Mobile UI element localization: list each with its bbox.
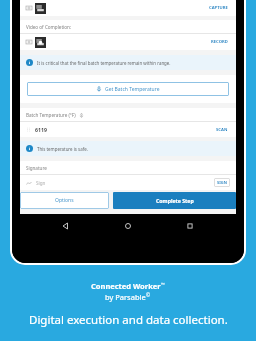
staticText: Options (55, 197, 74, 204)
button[interactable]: CAPTURE (207, 3, 230, 13)
staticText: Connected Worker (91, 281, 161, 291)
staticText: This temperature is safe. (37, 146, 88, 152)
button[interactable]: SIGN (214, 178, 230, 187)
button[interactable]: Complete Step (113, 192, 236, 209)
button[interactable]: Back (58, 218, 74, 234)
staticText: Sign (36, 180, 46, 186)
button[interactable]: RECORD (209, 37, 230, 47)
button[interactable]: Get Batch Temperature (27, 82, 229, 96)
button[interactable]: Reorder (20, 122, 236, 137)
staticText: RECORD (211, 39, 228, 45)
button[interactable]: Signature (20, 175, 236, 190)
staticText: by Parsable (105, 292, 146, 302)
staticText: Digital execution and data collection. (29, 312, 228, 328)
staticText: SCAN (216, 127, 228, 133)
other: Video (26, 39, 32, 45)
button[interactable]: Recents (182, 218, 198, 234)
button[interactable]: SCAN (214, 125, 230, 135)
button[interactable]: Options (20, 192, 109, 209)
button[interactable]: Video (20, 34, 236, 50)
other: Signature (26, 180, 32, 186)
staticText: © (146, 292, 151, 299)
staticText: Complete Step (156, 197, 194, 204)
staticText: SIGN (217, 180, 227, 185)
staticText: It is critical that the final batch temp… (37, 60, 171, 66)
staticText: 6119 (35, 126, 47, 133)
staticText: Batch Temperature (°F) (26, 112, 76, 118)
button[interactable]: Photo (20, 0, 236, 16)
staticText: ™ (161, 281, 165, 287)
button[interactable]: Home (120, 218, 136, 234)
other: Reorder (26, 127, 31, 132)
staticText: Signature (26, 165, 47, 171)
other: Photo (26, 5, 32, 11)
staticText: CAPTURE (209, 5, 228, 11)
other: Info (26, 59, 33, 66)
other: Info (26, 145, 33, 152)
staticText: Get Batch Temperature (105, 86, 160, 93)
staticText: Video of Completion: (26, 24, 72, 30)
